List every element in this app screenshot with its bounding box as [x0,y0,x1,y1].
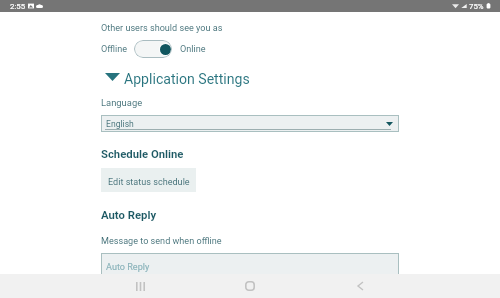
staticText: Other users should see you as [101,23,223,34]
staticText: Edit status schedule [108,177,190,188]
staticText: Auto Reply [101,209,157,222]
staticText: Schedule Online [101,148,184,161]
staticText: Auto Reply [106,262,150,273]
button[interactable]: Auto Reply [101,253,399,293]
staticText: 2:55 [10,2,26,11]
staticText: Language [101,97,143,108]
staticText: Message to send when offline [101,236,222,247]
button[interactable]: Application Settings [101,67,253,88]
button[interactable]: Home [238,274,262,298]
staticText: Application Settings [124,71,250,88]
staticText: Online [180,44,206,55]
button[interactable]: Edit status schedule [101,168,196,192]
staticText: Offline [101,44,128,55]
button[interactable] [134,40,172,58]
button[interactable]: English [101,115,399,132]
staticText: English [106,119,134,129]
button[interactable]: Back [348,274,372,298]
button[interactable]: Recent apps [128,274,152,298]
staticText: 75% [469,2,484,11]
